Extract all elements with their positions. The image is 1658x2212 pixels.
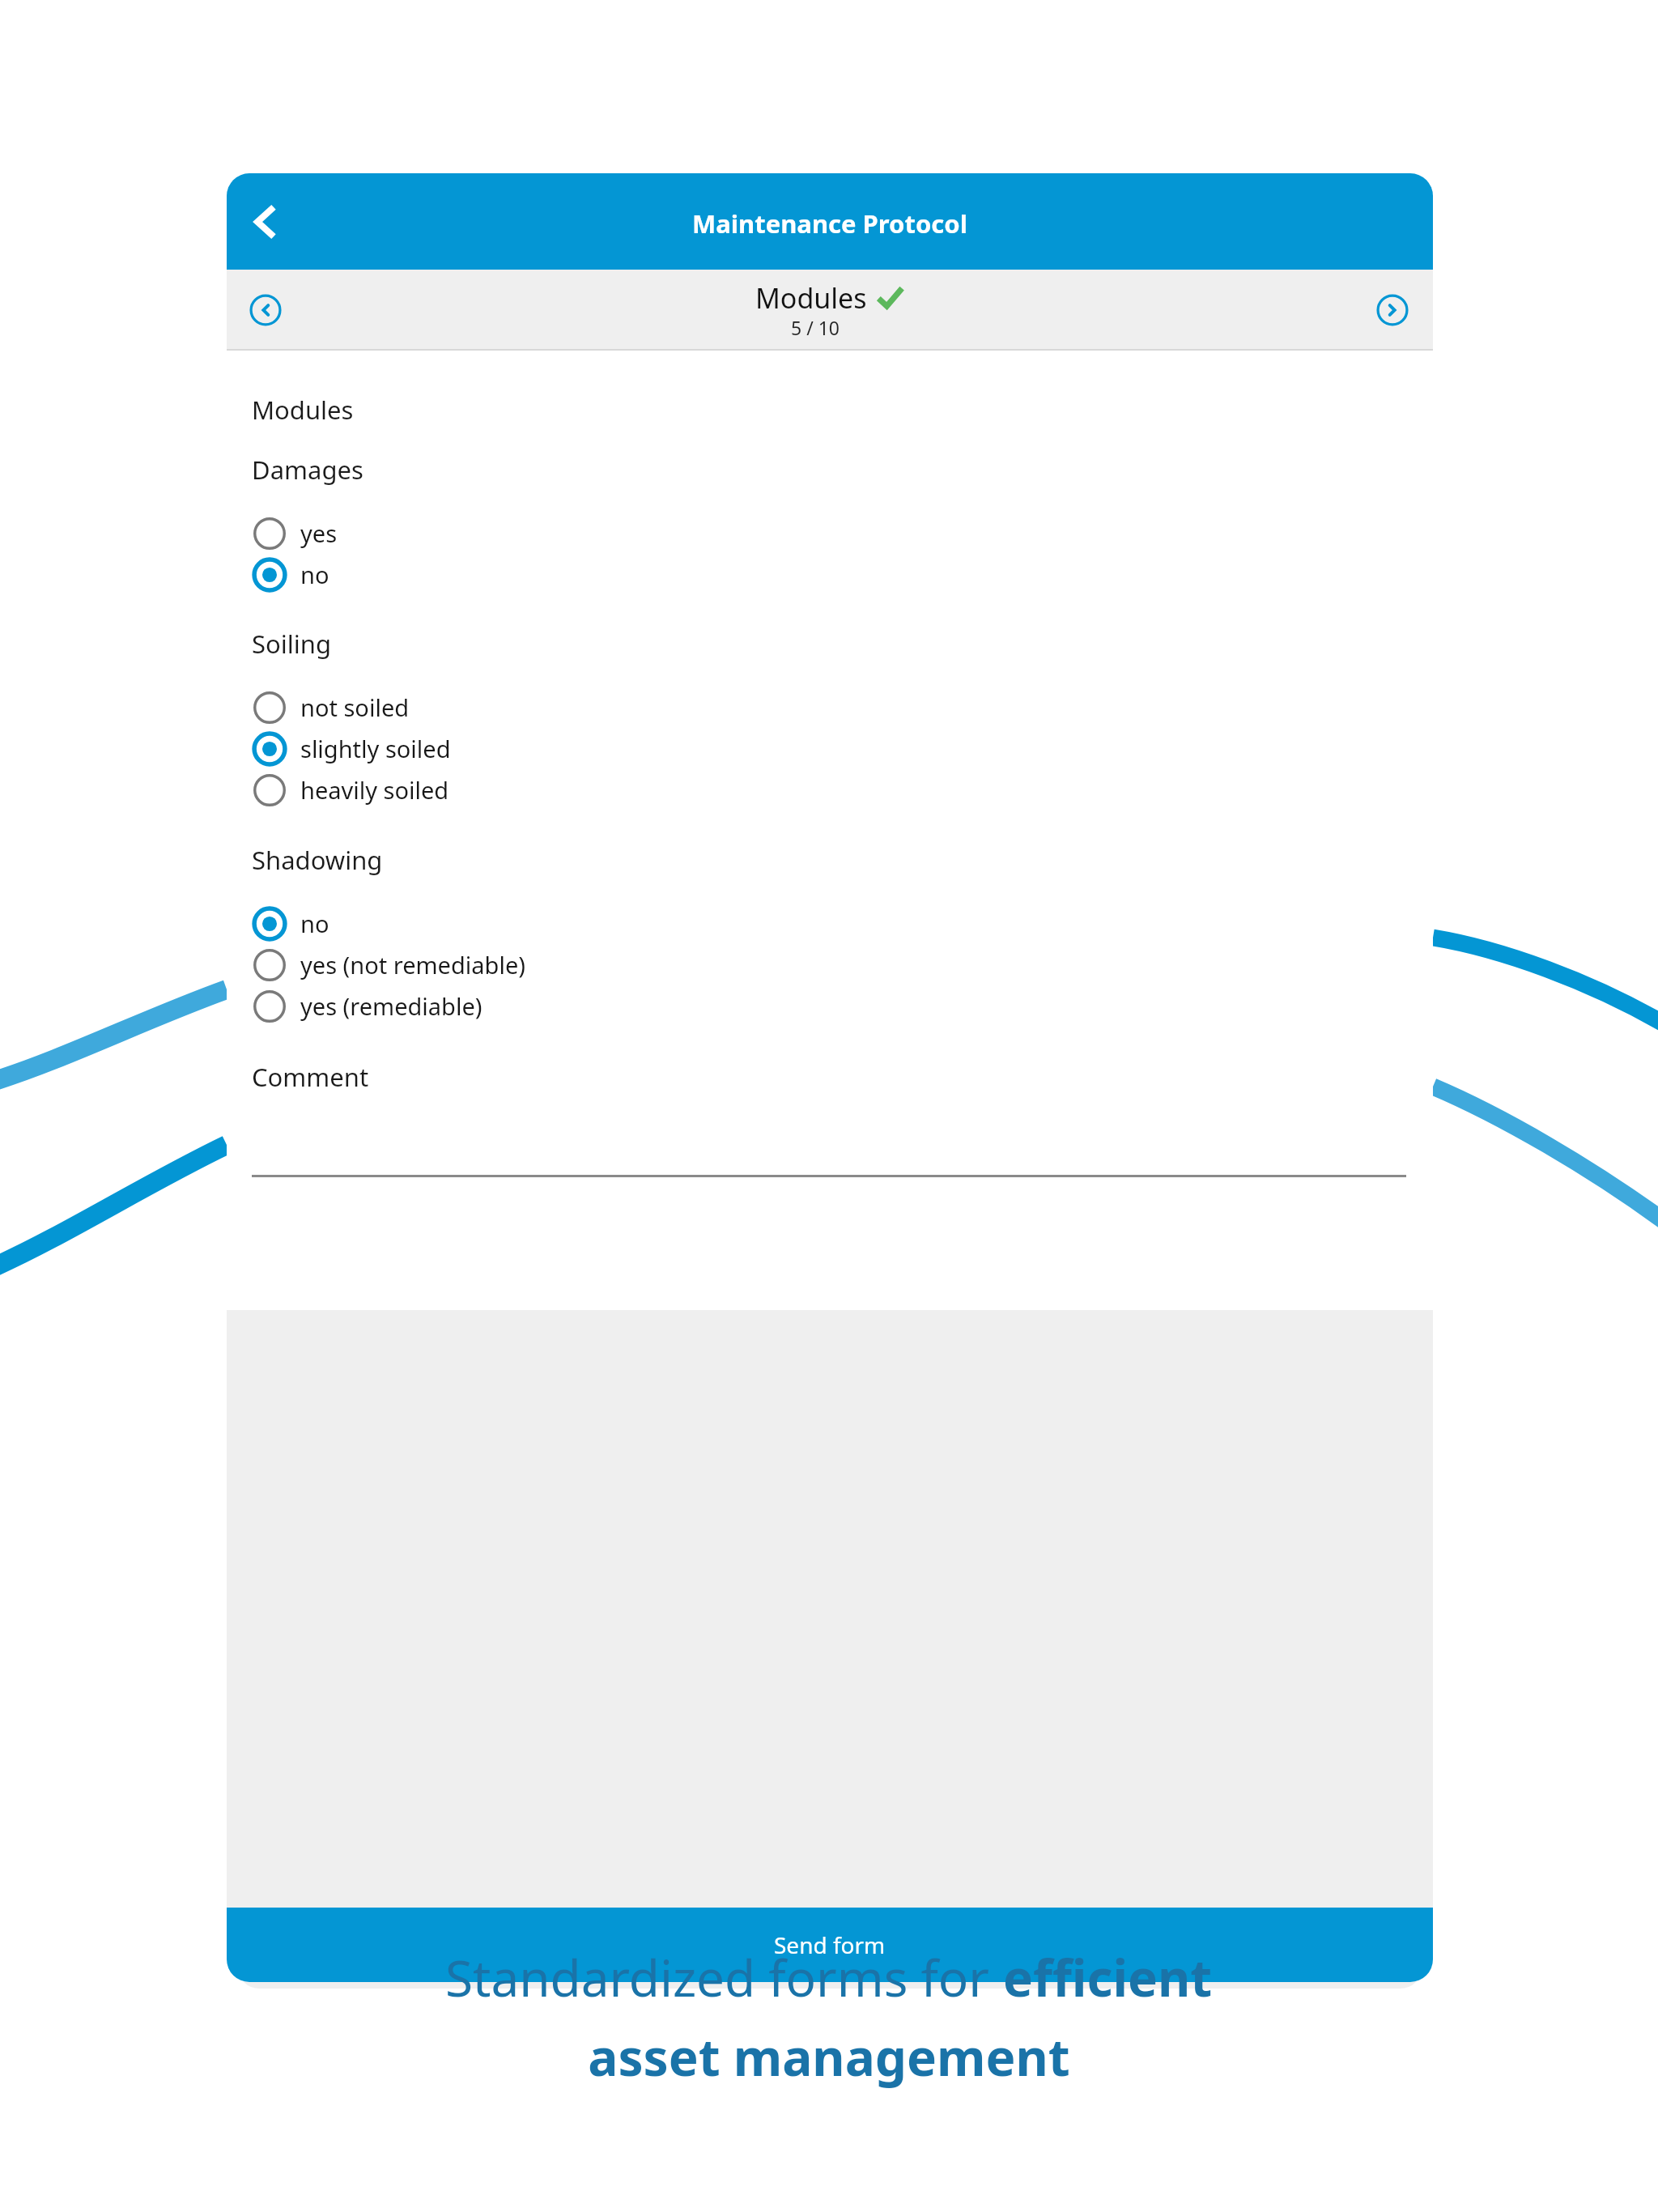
staticText: 5 / 10: [791, 315, 840, 340]
button[interactable]: yes: [252, 513, 1408, 554]
button[interactable]: Back: [235, 194, 291, 250]
button[interactable]: yes (remediable): [252, 985, 1408, 1027]
staticText: no: [300, 559, 329, 590]
staticText: yes: [300, 517, 338, 549]
button[interactable]: not soiled: [252, 687, 1408, 728]
staticText: no: [300, 908, 329, 939]
button[interactable]: Next section: [1371, 289, 1414, 331]
staticText: efficient: [1003, 1943, 1213, 2011]
button[interactable]: Previous section: [244, 289, 287, 331]
staticText: Shadowing: [252, 843, 383, 877]
button[interactable]: no: [252, 554, 1408, 595]
button[interactable]: no: [252, 903, 1408, 944]
staticText: Send form: [774, 1929, 886, 1960]
staticText: Modules: [252, 393, 354, 427]
staticText: Standardized forms for: [445, 1943, 1003, 2011]
staticText: Modules: [755, 279, 867, 317]
staticText: slightly soiled: [300, 733, 451, 764]
button[interactable]: slightly soiled: [252, 728, 1408, 769]
button[interactable]: heavily soiled: [252, 769, 1408, 810]
staticText: heavily soiled: [300, 774, 449, 806]
staticText: Damages: [252, 453, 363, 487]
staticText: yes (remediable): [300, 990, 483, 1022]
staticText: asset management: [588, 2023, 1070, 2091]
staticText: Maintenance Protocol: [692, 206, 967, 240]
staticText: Soiling: [252, 627, 331, 661]
staticText: not soiled: [300, 691, 410, 723]
staticText: yes (not remediable): [300, 949, 525, 981]
button[interactable]: Send form: [227, 1908, 1433, 1982]
button[interactable]: yes (not remediable): [252, 944, 1408, 985]
staticText: Comment: [252, 1060, 369, 1094]
